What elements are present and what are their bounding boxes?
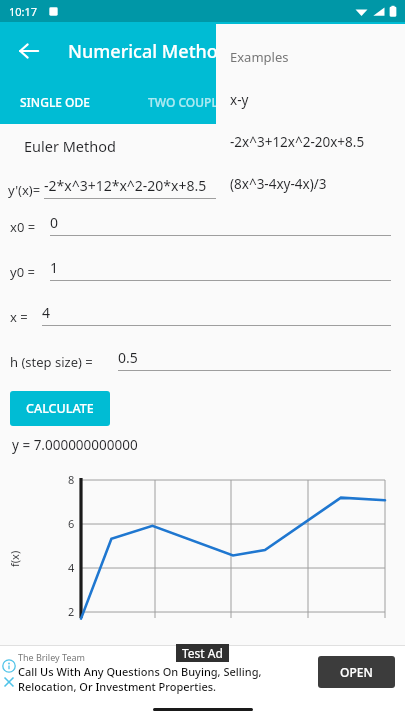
staticText: -2x^3+12x^2-20x+8.5 — [230, 133, 365, 151]
staticText: 4 — [68, 560, 75, 575]
staticText: Test Ad — [182, 645, 223, 661]
button[interactable]: -2x^3+12x^2-20x+8.5 — [216, 130, 405, 154]
staticText: The Briley Team — [18, 651, 85, 663]
staticText: x-y — [230, 91, 249, 109]
staticText: OPEN — [340, 664, 373, 680]
button[interactable]: Close ad — [2, 675, 16, 689]
staticText: x0 = — [10, 218, 39, 236]
staticText: 1 — [50, 258, 59, 277]
staticText: SINGLE ODE — [20, 94, 90, 110]
staticText: TWO COUPLED SYSTEM — [148, 94, 282, 110]
staticText: 8 — [68, 472, 75, 487]
staticText: 2 — [68, 604, 75, 619]
button[interactable]: SINGLE ODE — [0, 80, 110, 124]
button[interactable]: (8x^3-4xy-4x)/3 — [216, 172, 405, 196]
other: Ad info — [2, 659, 16, 673]
staticText: 0.5 — [118, 348, 138, 367]
staticText: 6 — [68, 516, 75, 531]
staticText: CALCULATE — [26, 400, 94, 417]
staticText: Euler Method — [24, 136, 116, 156]
staticText: h (step size) = — [10, 353, 97, 371]
button[interactable]: x-y — [216, 88, 405, 112]
staticText: f(x) — [7, 550, 22, 567]
staticText: 4 — [42, 303, 51, 322]
staticText: y'(x)= — [8, 181, 44, 199]
staticText: 0 — [50, 213, 59, 232]
button[interactable]: TWO COUPLED SYSTEM — [110, 80, 320, 124]
button[interactable]: CALCULATE — [10, 391, 110, 426]
staticText: Relocation, Or Investment Properties. — [18, 679, 217, 694]
button[interactable]: Examples — [216, 42, 405, 72]
staticText: x = — [10, 308, 32, 326]
staticText: y = 7.000000000000 — [12, 436, 138, 454]
staticText: 10:17 — [9, 4, 38, 19]
staticText: -2*x^3+12*x^2-20*x+8.5 — [44, 176, 207, 195]
staticText: y0 = — [10, 263, 39, 281]
staticText: Examples — [230, 48, 289, 66]
staticText: Numerical Methods — [68, 39, 238, 64]
button[interactable]: Back — [8, 30, 50, 72]
button[interactable]: OPEN — [318, 656, 395, 688]
staticText: (8x^3-4xy-4x)/3 — [230, 175, 327, 193]
staticText: Call Us With Any Questions On Buying, Se… — [18, 664, 262, 679]
